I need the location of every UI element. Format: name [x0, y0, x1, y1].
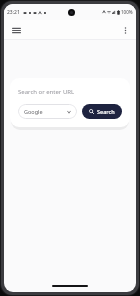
button[interactable]: More options	[118, 23, 132, 37]
staticText: Search	[97, 108, 115, 115]
staticText: Search or enter URL	[18, 88, 75, 96]
button[interactable]: Google	[18, 104, 77, 119]
button[interactable]: Search or enter URL	[18, 86, 122, 97]
staticText: 100%	[121, 9, 133, 15]
button[interactable]: Open navigation menu	[9, 23, 23, 37]
staticText: Google	[24, 108, 67, 115]
button[interactable]: Search	[82, 104, 122, 119]
staticText: 23:21	[7, 9, 20, 16]
